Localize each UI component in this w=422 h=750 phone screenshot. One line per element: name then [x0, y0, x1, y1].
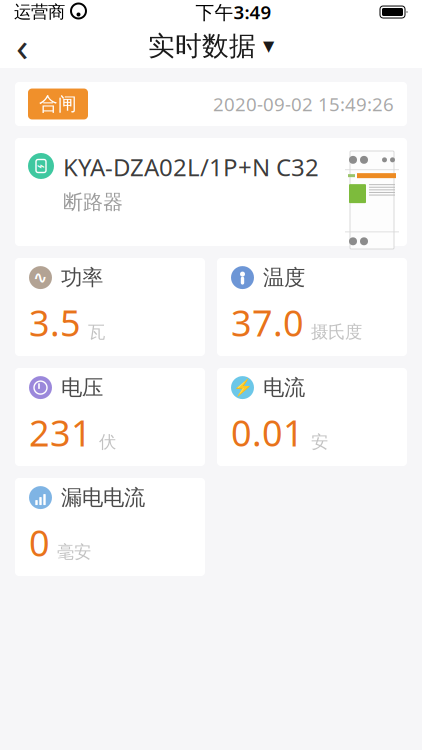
- button[interactable]: 漏电电流: [15, 478, 205, 576]
- staticText: 下午3:49: [195, 0, 271, 24]
- staticText: 231: [29, 409, 92, 456]
- staticText: 摄氏度: [311, 321, 362, 342]
- button[interactable]: 实时数据: [140, 24, 282, 68]
- staticText: 温度: [263, 264, 305, 291]
- staticText: 功率: [61, 264, 103, 291]
- button[interactable]: 电压: [15, 368, 205, 466]
- button[interactable]: Back: [0, 24, 44, 68]
- staticText: 安: [311, 431, 328, 452]
- staticText: 毫安: [57, 541, 91, 562]
- staticText: 3.5: [29, 299, 81, 346]
- staticText: 0: [29, 519, 50, 566]
- staticText: 合闸: [39, 92, 77, 115]
- staticText: 运营商: [14, 1, 65, 23]
- staticText: ▼: [263, 38, 274, 54]
- staticText: ‹: [16, 19, 28, 72]
- staticText: 瓦: [88, 321, 105, 342]
- staticText: 伏: [99, 431, 116, 452]
- staticText: KYA-DZA02L/1P+N C32: [63, 151, 319, 183]
- staticText: 断路器: [63, 190, 123, 214]
- staticText: 实时数据: [148, 30, 256, 62]
- staticText: 漏电电流: [61, 484, 145, 511]
- staticText: 2020-09-02 15:49:26: [213, 92, 394, 116]
- staticText: 37.0: [231, 299, 304, 346]
- button[interactable]: 温度: [217, 258, 407, 356]
- staticText: 0.01: [231, 409, 304, 456]
- staticText: ⚡: [232, 378, 252, 397]
- button[interactable]: ∿: [15, 258, 205, 356]
- button[interactable]: ⚡: [217, 368, 407, 466]
- staticText: 电压: [61, 374, 103, 401]
- staticText: ∿: [33, 268, 48, 287]
- staticText: ⌁: [37, 158, 45, 173]
- staticText: 电流: [263, 374, 305, 401]
